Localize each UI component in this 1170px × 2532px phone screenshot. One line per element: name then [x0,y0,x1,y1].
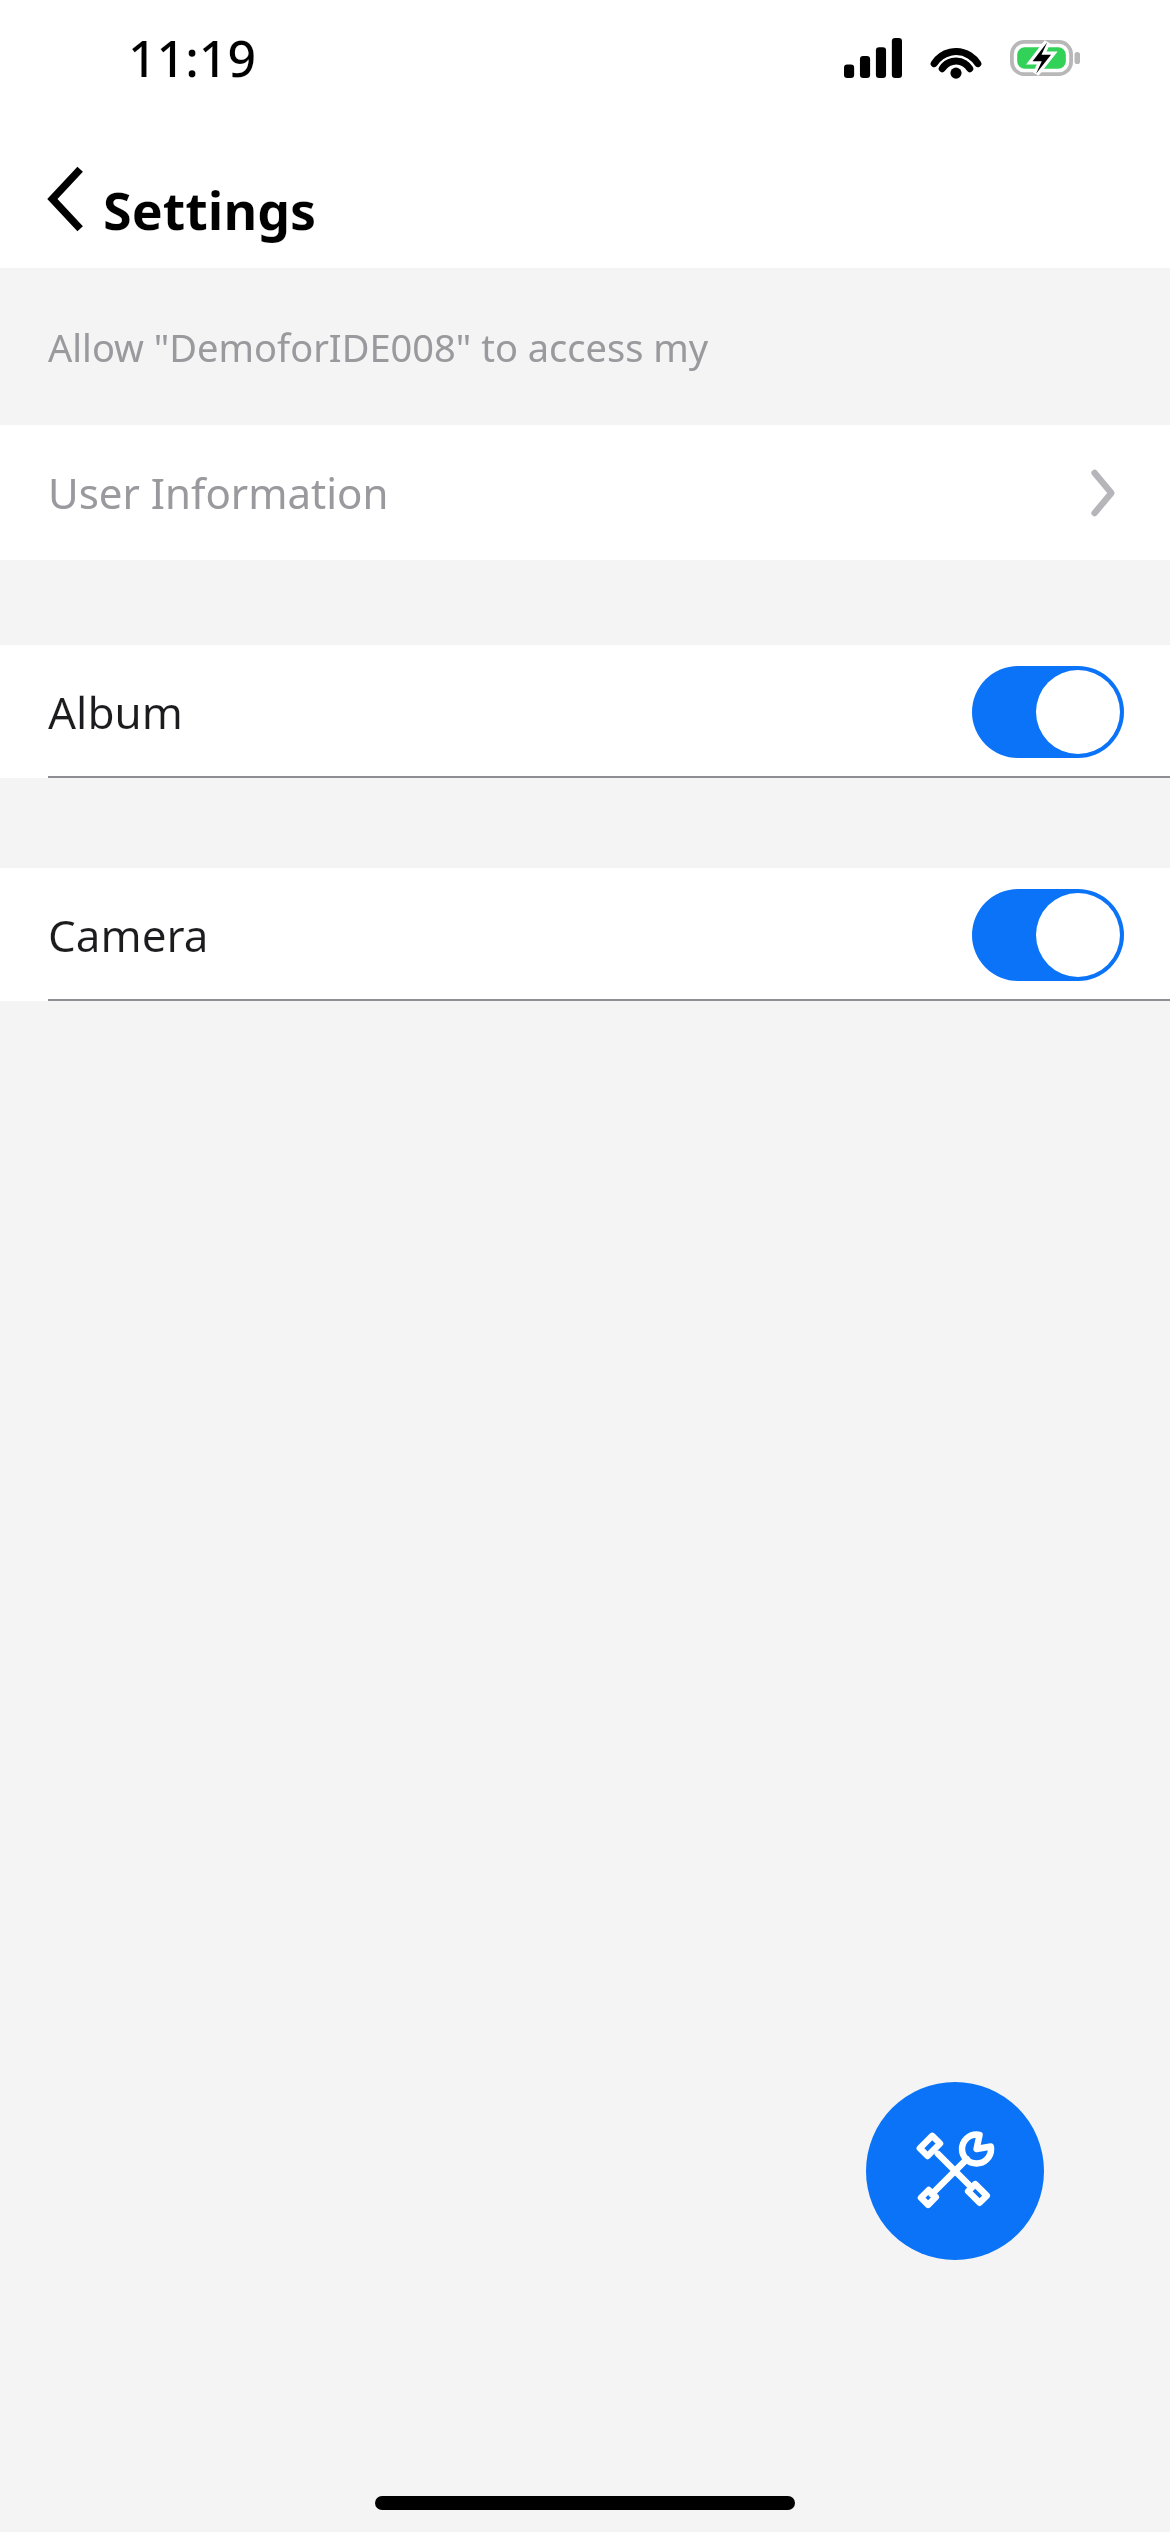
staticText: Allow "DemoforIDE008" to access my [48,321,709,373]
button[interactable]: Toggle [972,889,1124,981]
staticText: Album [48,682,183,742]
button[interactable]: Album [0,645,1170,778]
button[interactable]: User Information [0,425,1170,560]
button[interactable]: Back [24,158,106,240]
button[interactable]: Toggle [972,666,1124,758]
button[interactable]: Camera [0,868,1170,1001]
staticText: Settings [103,174,317,245]
staticText: User Information [48,464,389,521]
button[interactable]: Developer tools [866,2082,1044,2260]
staticText: Camera [48,905,209,965]
staticText: 11:19 [128,24,256,92]
